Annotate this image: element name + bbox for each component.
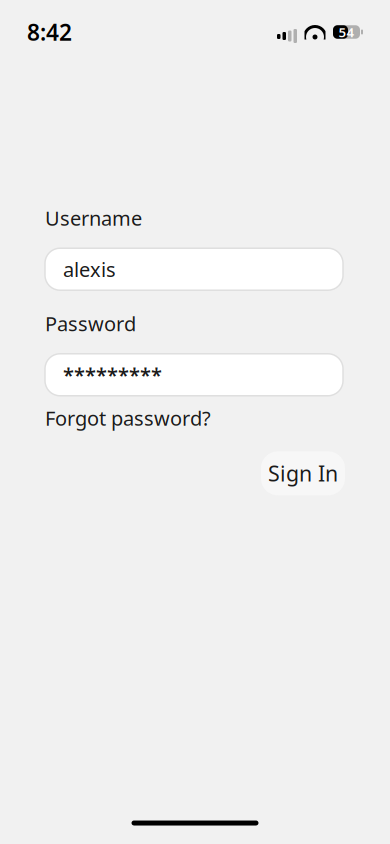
- staticText: Password: [45, 310, 136, 337]
- button[interactable]: *********: [45, 354, 343, 396]
- staticText: 8:42: [27, 17, 72, 47]
- staticText: Username: [45, 205, 142, 231]
- staticText: 54: [338, 23, 354, 41]
- button[interactable]: Sign In: [261, 451, 345, 495]
- button[interactable]: alexis: [45, 248, 343, 290]
- button[interactable]: Forgot password?: [45, 396, 211, 431]
- staticText: alexis: [63, 256, 116, 282]
- staticText: *********: [63, 361, 162, 388]
- staticText: Forgot password?: [45, 405, 211, 431]
- staticText: Sign In: [268, 459, 338, 487]
